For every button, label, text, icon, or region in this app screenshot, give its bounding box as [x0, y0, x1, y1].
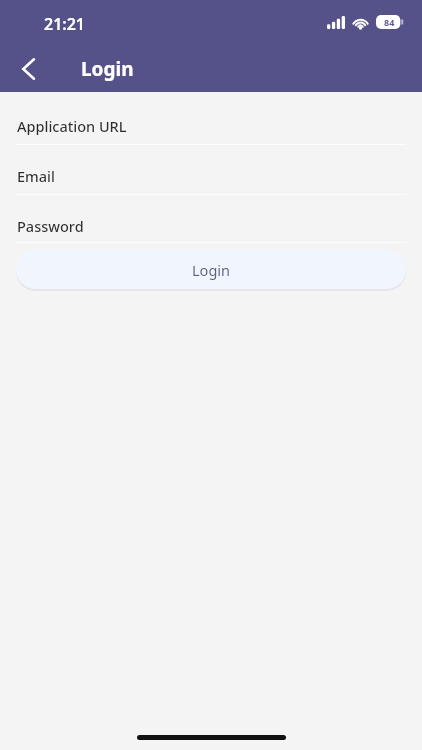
button[interactable]: Application URL — [0, 108, 422, 144]
staticText: Application URL — [17, 116, 127, 136]
staticText: Login — [192, 260, 230, 280]
staticText: Email — [17, 166, 55, 186]
staticText: Password — [17, 216, 84, 236]
button[interactable]: Password — [0, 208, 422, 244]
staticText: 84 — [384, 16, 395, 28]
button[interactable]: Login — [16, 250, 406, 289]
button[interactable]: Email — [0, 158, 422, 194]
staticText: 21:21 — [44, 13, 86, 35]
button[interactable]: Back — [6, 47, 50, 91]
staticText: Login — [81, 56, 134, 82]
